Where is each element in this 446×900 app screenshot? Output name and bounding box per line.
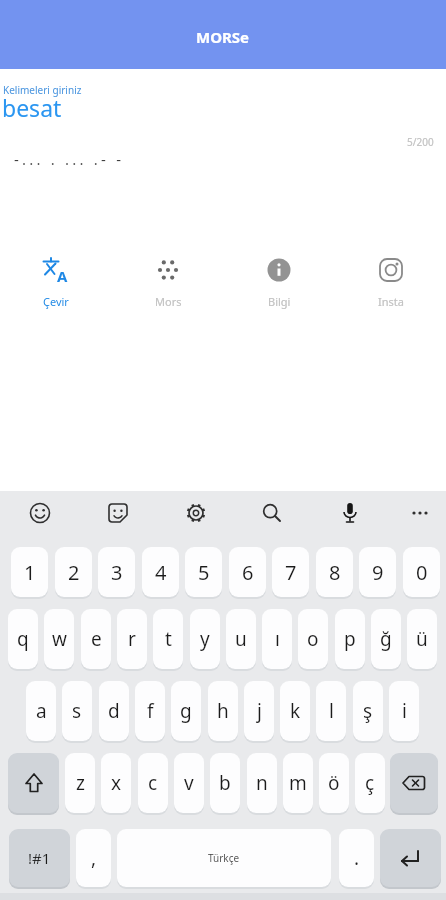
button[interactable] <box>258 499 286 527</box>
staticText: 4 <box>155 559 167 586</box>
button[interactable]: v <box>174 753 204 813</box>
staticText: Bilgi <box>268 294 291 309</box>
button[interactable]: Insta <box>335 248 446 314</box>
button[interactable]: w <box>44 609 74 669</box>
staticText: j <box>257 698 262 724</box>
button[interactable]: j <box>244 681 274 741</box>
button[interactable]: ş <box>353 681 383 741</box>
button[interactable]: b <box>210 753 240 813</box>
staticText: 8 <box>329 559 341 586</box>
staticText: 7 <box>285 559 297 586</box>
button[interactable]: 7 <box>272 547 309 597</box>
button[interactable]: Türkçe <box>117 829 331 887</box>
button[interactable]: i <box>389 681 419 741</box>
staticText: 6 <box>242 559 254 586</box>
button[interactable]: n <box>247 753 277 813</box>
button[interactable]: ç <box>355 753 385 813</box>
staticText: a <box>36 698 47 724</box>
button[interactable]: 8 <box>316 547 353 597</box>
button[interactable]: p <box>335 609 365 669</box>
button[interactable]: 9 <box>359 547 396 597</box>
button[interactable]: 1 <box>11 547 48 597</box>
staticText: MORSe <box>196 27 250 47</box>
button[interactable]: 6 <box>229 547 266 597</box>
button[interactable]: ğ <box>371 609 401 669</box>
button[interactable]: 5 <box>185 547 222 597</box>
staticText: -... . ... .- - <box>14 149 125 169</box>
button[interactable]: h <box>208 681 238 741</box>
button[interactable]: MORSe <box>0 0 446 69</box>
button[interactable]: 2 <box>55 547 92 597</box>
button[interactable]: s <box>62 681 92 741</box>
staticText: , <box>91 845 97 871</box>
staticText: y <box>200 626 210 652</box>
staticText: w <box>52 626 67 652</box>
staticText: 1 <box>24 559 36 586</box>
staticText: 0 <box>416 559 428 586</box>
button[interactable] <box>26 499 54 527</box>
button[interactable]: ö <box>319 753 349 813</box>
button[interactable] <box>390 753 438 813</box>
staticText: g <box>180 698 192 724</box>
button[interactable]: g <box>171 681 201 741</box>
button[interactable]: k <box>280 681 310 741</box>
button[interactable]: d <box>99 681 129 741</box>
staticText: ş <box>363 698 373 724</box>
staticText: A <box>57 266 68 286</box>
button[interactable] <box>336 499 364 527</box>
button[interactable]: A <box>0 248 112 314</box>
button[interactable]: !#1 <box>9 829 70 887</box>
staticText: b <box>219 770 231 796</box>
button[interactable]: Bilgi <box>223 248 335 314</box>
button[interactable] <box>182 499 210 527</box>
staticText: r <box>128 626 136 652</box>
button[interactable]: 0 <box>403 547 440 597</box>
staticText: t <box>165 626 172 652</box>
button[interactable]: m <box>283 753 313 813</box>
button[interactable] <box>380 829 441 887</box>
staticText: m <box>289 770 307 796</box>
button[interactable]: e <box>81 609 111 669</box>
staticText: ı <box>275 626 280 652</box>
button[interactable]: l <box>316 681 346 741</box>
staticText: s <box>72 698 82 724</box>
button[interactable]: 4 <box>142 547 179 597</box>
staticText: ç <box>365 770 375 796</box>
staticText: l <box>329 698 334 724</box>
button[interactable]: a <box>26 681 56 741</box>
button[interactable]: Mors <box>112 248 224 314</box>
staticText: besat <box>2 92 62 123</box>
staticText: u <box>235 626 247 652</box>
button[interactable]: o <box>298 609 328 669</box>
button[interactable]: f <box>135 681 165 741</box>
staticText: f <box>147 698 154 724</box>
staticText: x <box>111 770 122 796</box>
staticText: q <box>17 626 29 652</box>
staticText: 3 <box>111 559 123 586</box>
button[interactable]: y <box>190 609 220 669</box>
button[interactable]: ü <box>407 609 437 669</box>
staticText: o <box>307 626 319 652</box>
button[interactable] <box>8 753 59 813</box>
button[interactable]: u <box>226 609 256 669</box>
button[interactable]: c <box>138 753 168 813</box>
button[interactable] <box>406 499 434 527</box>
button[interactable]: r <box>117 609 147 669</box>
button[interactable]: t <box>153 609 183 669</box>
button[interactable]: , <box>76 829 111 887</box>
staticText: Çevir <box>43 294 69 309</box>
button[interactable] <box>104 499 132 527</box>
staticText: 5 <box>198 559 210 586</box>
button[interactable]: z <box>65 753 95 813</box>
staticText: . <box>354 845 360 871</box>
staticText: n <box>256 770 268 796</box>
staticText: Insta <box>378 294 404 309</box>
button[interactable]: . <box>339 829 374 887</box>
button[interactable]: ı <box>262 609 292 669</box>
staticText: 5/200 <box>407 135 434 149</box>
button[interactable]: x <box>101 753 131 813</box>
staticText: h <box>217 698 229 724</box>
staticText: ö <box>328 770 340 796</box>
button[interactable]: 3 <box>98 547 135 597</box>
button[interactable]: q <box>8 609 38 669</box>
